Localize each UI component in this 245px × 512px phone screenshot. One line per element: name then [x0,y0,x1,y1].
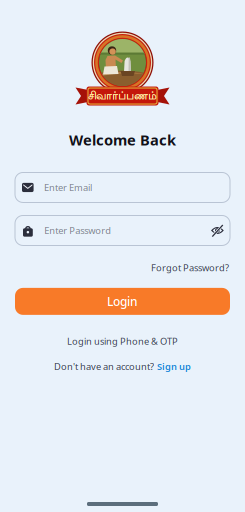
staticText: Login [107,293,138,309]
staticText: Sign up [157,360,191,373]
staticText: Enter Password [44,224,111,237]
staticText: Login using Phone & OTP [67,335,178,347]
button[interactable]: Login using Phone & OTP [67,335,178,347]
staticText: Enter Email [44,181,92,194]
staticText: சிவார்ப்பணம் [88,91,157,103]
staticText: Forgot Password? [151,261,229,274]
button[interactable]: Login [15,288,230,315]
staticText: Don't have an account? [54,360,154,373]
staticText: Welcome Back [69,130,176,149]
button[interactable]: Forgot Password? [151,261,229,274]
button[interactable]: Sign up [157,360,191,373]
